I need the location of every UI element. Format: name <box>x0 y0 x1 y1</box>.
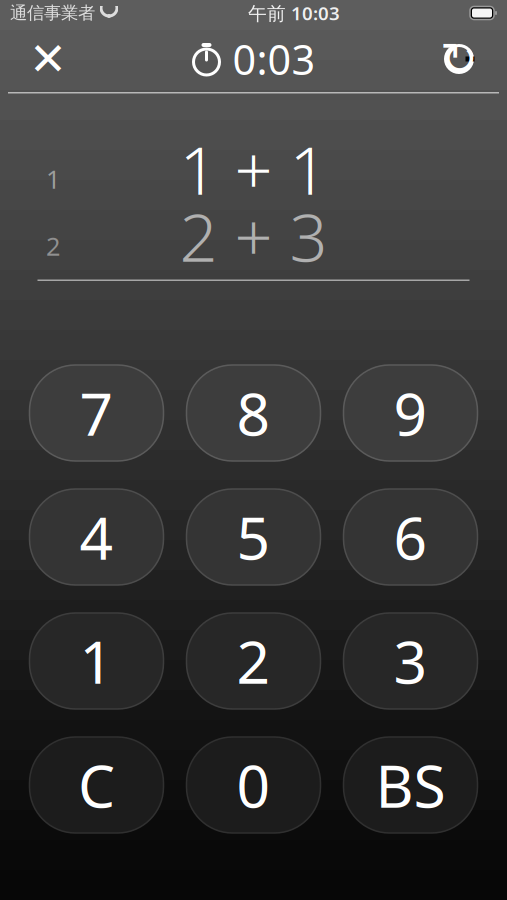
staticText: 6 <box>393 498 427 576</box>
staticText: 4 <box>79 498 113 576</box>
staticText: 5 <box>236 498 270 576</box>
button[interactable]: 5 <box>186 489 320 585</box>
staticText: 7 <box>79 374 113 452</box>
button[interactable]: Restart <box>411 26 507 92</box>
button[interactable]: 9 <box>343 365 477 461</box>
button[interactable]: 2 <box>186 613 320 709</box>
button[interactable]: 3 <box>343 613 477 709</box>
staticText: 3 <box>393 622 427 700</box>
staticText: 2 + 3 <box>179 192 327 280</box>
button[interactable]: 0 <box>186 737 320 833</box>
button[interactable]: 6 <box>343 489 477 585</box>
staticText: 8 <box>236 374 270 452</box>
staticText: ✕ <box>29 33 67 85</box>
staticText: 0:03 <box>232 32 315 86</box>
staticText: 0 <box>236 746 270 824</box>
staticText: BS <box>375 746 445 824</box>
staticText: 9 <box>393 374 427 452</box>
button[interactable]: 7 <box>29 365 163 461</box>
button[interactable]: C <box>29 737 163 833</box>
button[interactable]: 4 <box>29 489 163 585</box>
button[interactable]: Close <box>0 26 96 92</box>
button[interactable]: 1 <box>29 613 163 709</box>
staticText: ↻ <box>440 33 478 85</box>
staticText: C <box>78 746 115 824</box>
button[interactable]: BS <box>343 737 477 833</box>
staticText: 1 <box>46 162 60 196</box>
staticText: 2 <box>236 622 270 700</box>
staticText: 1 + 1 <box>179 125 327 213</box>
staticText: 1 <box>79 622 113 700</box>
staticText: 2 <box>46 229 60 263</box>
staticText: 通信事業者 <box>10 2 95 24</box>
staticText: 午前 10:03 <box>248 1 340 25</box>
button[interactable]: 8 <box>186 365 320 461</box>
